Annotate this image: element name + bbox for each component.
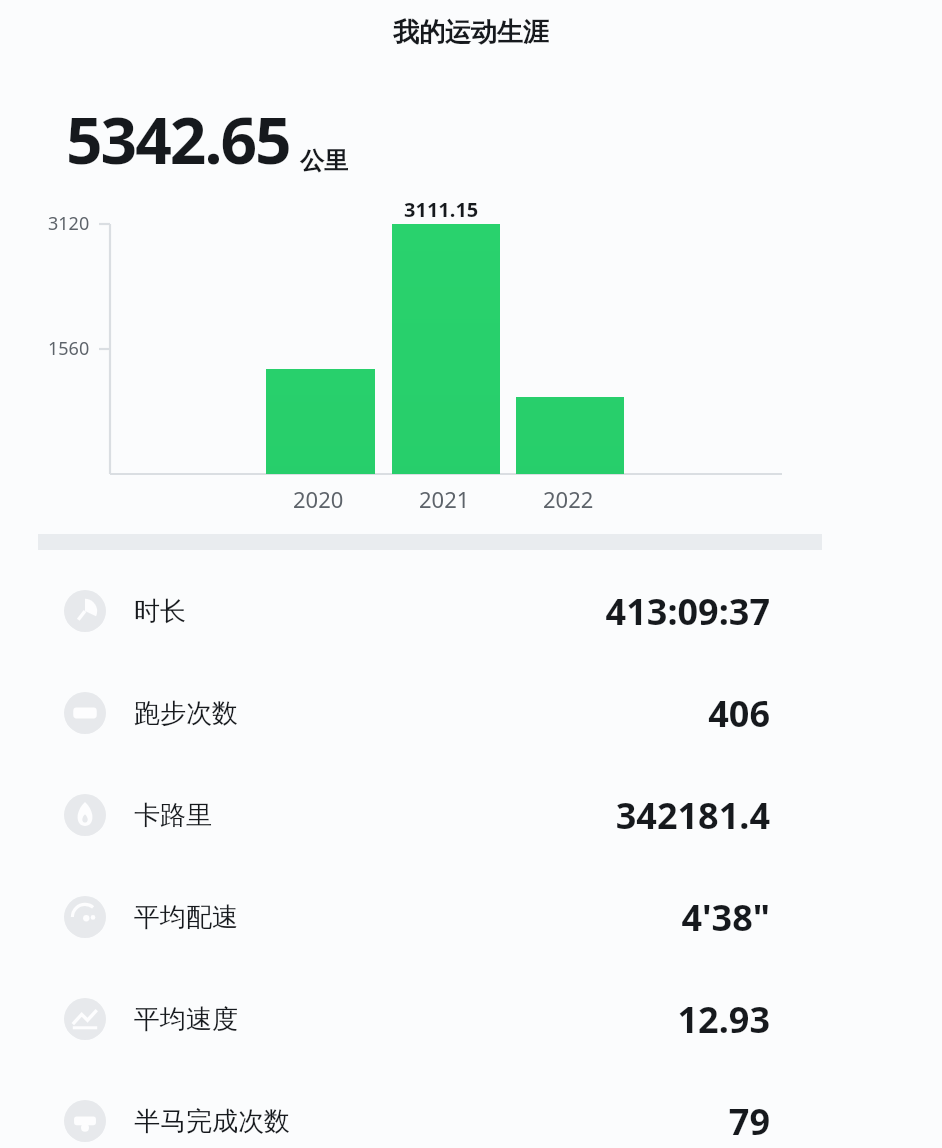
- staticText: 2021: [419, 484, 470, 514]
- staticText: 5342.65: [66, 96, 290, 183]
- staticText: 4'38": [681, 893, 770, 942]
- staticText: 时长: [134, 595, 186, 628]
- other: 时长: [64, 590, 106, 632]
- button[interactable]: 时长: [0, 560, 942, 662]
- other: 平均速度: [64, 998, 106, 1040]
- staticText: 342181.4: [615, 791, 770, 840]
- staticText: 79: [728, 1097, 770, 1146]
- staticText: 12.93: [677, 995, 770, 1044]
- button[interactable]: 平均配速: [0, 866, 942, 968]
- button[interactable]: 卡路里: [0, 764, 942, 866]
- button[interactable]: 平均速度: [0, 968, 942, 1070]
- staticText: 我的运动生涯: [393, 16, 549, 49]
- other: 跑步次数: [64, 692, 106, 734]
- staticText: 413:09:37: [605, 587, 770, 636]
- staticText: 卡路里: [134, 799, 212, 832]
- staticText: 平均速度: [134, 1003, 238, 1036]
- button[interactable]: 半马完成次数: [0, 1070, 942, 1148]
- button[interactable]: 跑步次数: [0, 662, 942, 764]
- other: 平均配速: [64, 896, 106, 938]
- staticText: 公里: [300, 146, 348, 176]
- staticText: 跑步次数: [134, 697, 238, 730]
- staticText: 3120: [48, 211, 90, 236]
- staticText: 2022: [543, 484, 594, 514]
- staticText: 半马完成次数: [134, 1105, 290, 1138]
- staticText: 1560: [48, 336, 90, 361]
- staticText: 2020: [293, 484, 344, 514]
- staticText: 平均配速: [134, 901, 238, 934]
- staticText: 3111.15: [404, 196, 479, 223]
- staticText: 406: [708, 689, 770, 738]
- other: 半马完成次数: [64, 1100, 106, 1142]
- other: 卡路里: [64, 794, 106, 836]
